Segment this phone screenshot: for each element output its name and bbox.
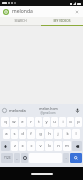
button[interactable]: s [11, 129, 18, 139]
staticText: t [38, 119, 40, 125]
button[interactable]: r [27, 117, 34, 127]
button[interactable]: Emoji [21, 153, 28, 163]
button[interactable]: j [54, 129, 62, 139]
button[interactable]: u [51, 117, 58, 127]
button[interactable]: f [27, 129, 35, 139]
button[interactable]: ?123 [1, 153, 13, 163]
button[interactable]: g [36, 129, 44, 139]
button[interactable]: k [63, 129, 71, 139]
staticText: w [12, 119, 16, 125]
button[interactable]: e [19, 117, 26, 127]
button[interactable]: n [54, 141, 62, 151]
button[interactable]: Voice input [74, 107, 81, 114]
button[interactable]: melon.hom [33, 106, 63, 115]
button[interactable]: p [75, 117, 82, 127]
button[interactable]: q [1, 117, 9, 127]
staticText: k [66, 131, 69, 137]
staticText: melon.hom [39, 106, 58, 111]
button[interactable]: o [67, 117, 74, 127]
staticText: b [48, 143, 51, 149]
staticText: @gmail.com [40, 111, 56, 115]
staticText: u [53, 119, 56, 125]
staticText: SEARCH [14, 19, 27, 23]
staticText: , [16, 155, 18, 161]
staticText: i [62, 119, 64, 125]
button[interactable]: App icon [0, 6, 83, 17]
staticText: f [30, 131, 32, 137]
staticText: s [13, 131, 16, 137]
button[interactable]: , [14, 153, 20, 163]
button[interactable]: a [3, 129, 10, 139]
staticText: a [5, 131, 8, 137]
button[interactable]: b [45, 141, 53, 151]
button[interactable]: Shift [1, 141, 10, 151]
staticText: o [69, 119, 72, 125]
button[interactable]: v [36, 141, 44, 151]
button[interactable]: Search [70, 153, 82, 163]
staticText: r [30, 119, 32, 125]
button[interactable]: SEARCH [0, 17, 41, 25]
button[interactable]: MY VIDEOS [41, 17, 83, 25]
staticText: h [48, 131, 51, 137]
button[interactable]: l [72, 129, 80, 139]
staticText: v [39, 143, 42, 149]
staticText: n [57, 143, 60, 149]
button[interactable]: d [19, 129, 26, 139]
staticText: e [21, 119, 24, 125]
staticText: x [21, 143, 24, 149]
button[interactable]: w [10, 117, 18, 127]
staticText: melonda [12, 8, 73, 15]
button[interactable]: App icon [3, 9, 9, 15]
staticText: y [45, 119, 48, 125]
button[interactable]: h [45, 129, 53, 139]
button[interactable]: t [35, 117, 42, 127]
button[interactable]: m [63, 141, 71, 151]
staticText: d [21, 131, 24, 137]
staticText: c [30, 143, 33, 149]
button[interactable]: Backspace [72, 141, 82, 151]
button[interactable]: i [59, 117, 66, 127]
staticText: z [14, 143, 16, 149]
staticText: m [65, 143, 69, 149]
button[interactable]: Clear search [73, 8, 80, 15]
button[interactable]: y [43, 117, 50, 127]
button[interactable]: z [11, 141, 18, 151]
staticText: p [77, 119, 80, 125]
button[interactable]: x [19, 141, 26, 151]
staticText: . [65, 155, 67, 161]
button[interactable]: c [27, 141, 35, 151]
button[interactable]: melonda [9, 108, 33, 113]
staticText: MY VIDEOS [53, 19, 71, 23]
staticText: ?123 [4, 156, 11, 160]
staticText: j [57, 131, 59, 137]
staticText: l [75, 131, 77, 137]
button[interactable]: Home [31, 173, 53, 175]
button[interactable]: Google search [2, 108, 7, 113]
staticText: q [4, 119, 7, 125]
staticText: g [39, 131, 42, 137]
